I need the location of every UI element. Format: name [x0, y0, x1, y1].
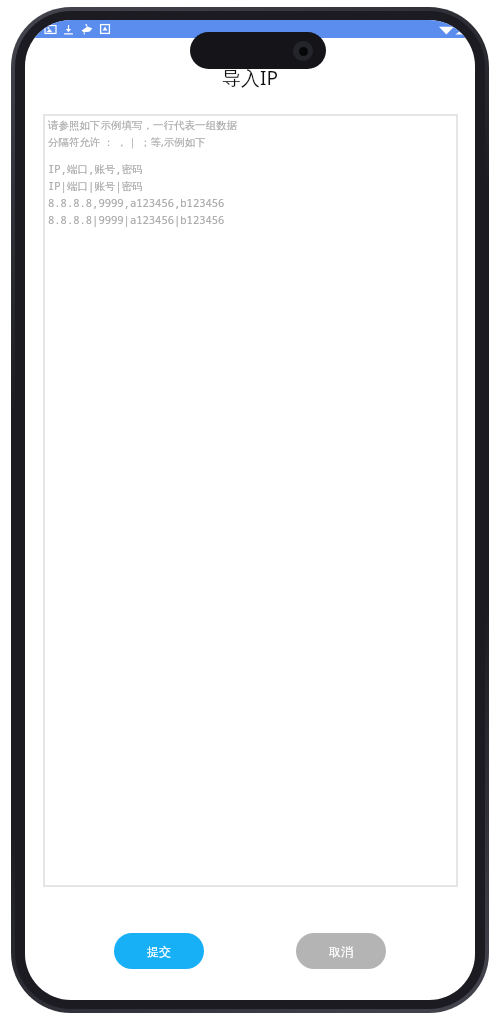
staticText: 8.8.8.8|9999|a123456|b123456 [48, 213, 225, 227]
staticText: 取消 [329, 944, 353, 959]
other: Download [63, 24, 74, 35]
staticText: 导入IP [222, 65, 278, 91]
other: App notification [81, 23, 93, 35]
other: Screenshot [45, 24, 56, 35]
other: Message [100, 24, 110, 34]
staticText: 请参照如下示例填写，一行代表一组数据 [48, 119, 237, 132]
staticText: 分隔符允许 ： ，｜ ；等,示例如下 [48, 135, 206, 149]
staticText: IP,端口,账号,密码 [48, 162, 143, 176]
staticText: IP|端口|账号|密码 [48, 179, 143, 193]
button[interactable]: 取消 [296, 933, 386, 969]
other: Wi-Fi signal [439, 24, 467, 35]
staticText: 提交 [147, 944, 171, 959]
staticText: 8.8.8.8,9999,a123456,b123456 [48, 196, 225, 210]
button[interactable]: 提交 [114, 933, 204, 969]
